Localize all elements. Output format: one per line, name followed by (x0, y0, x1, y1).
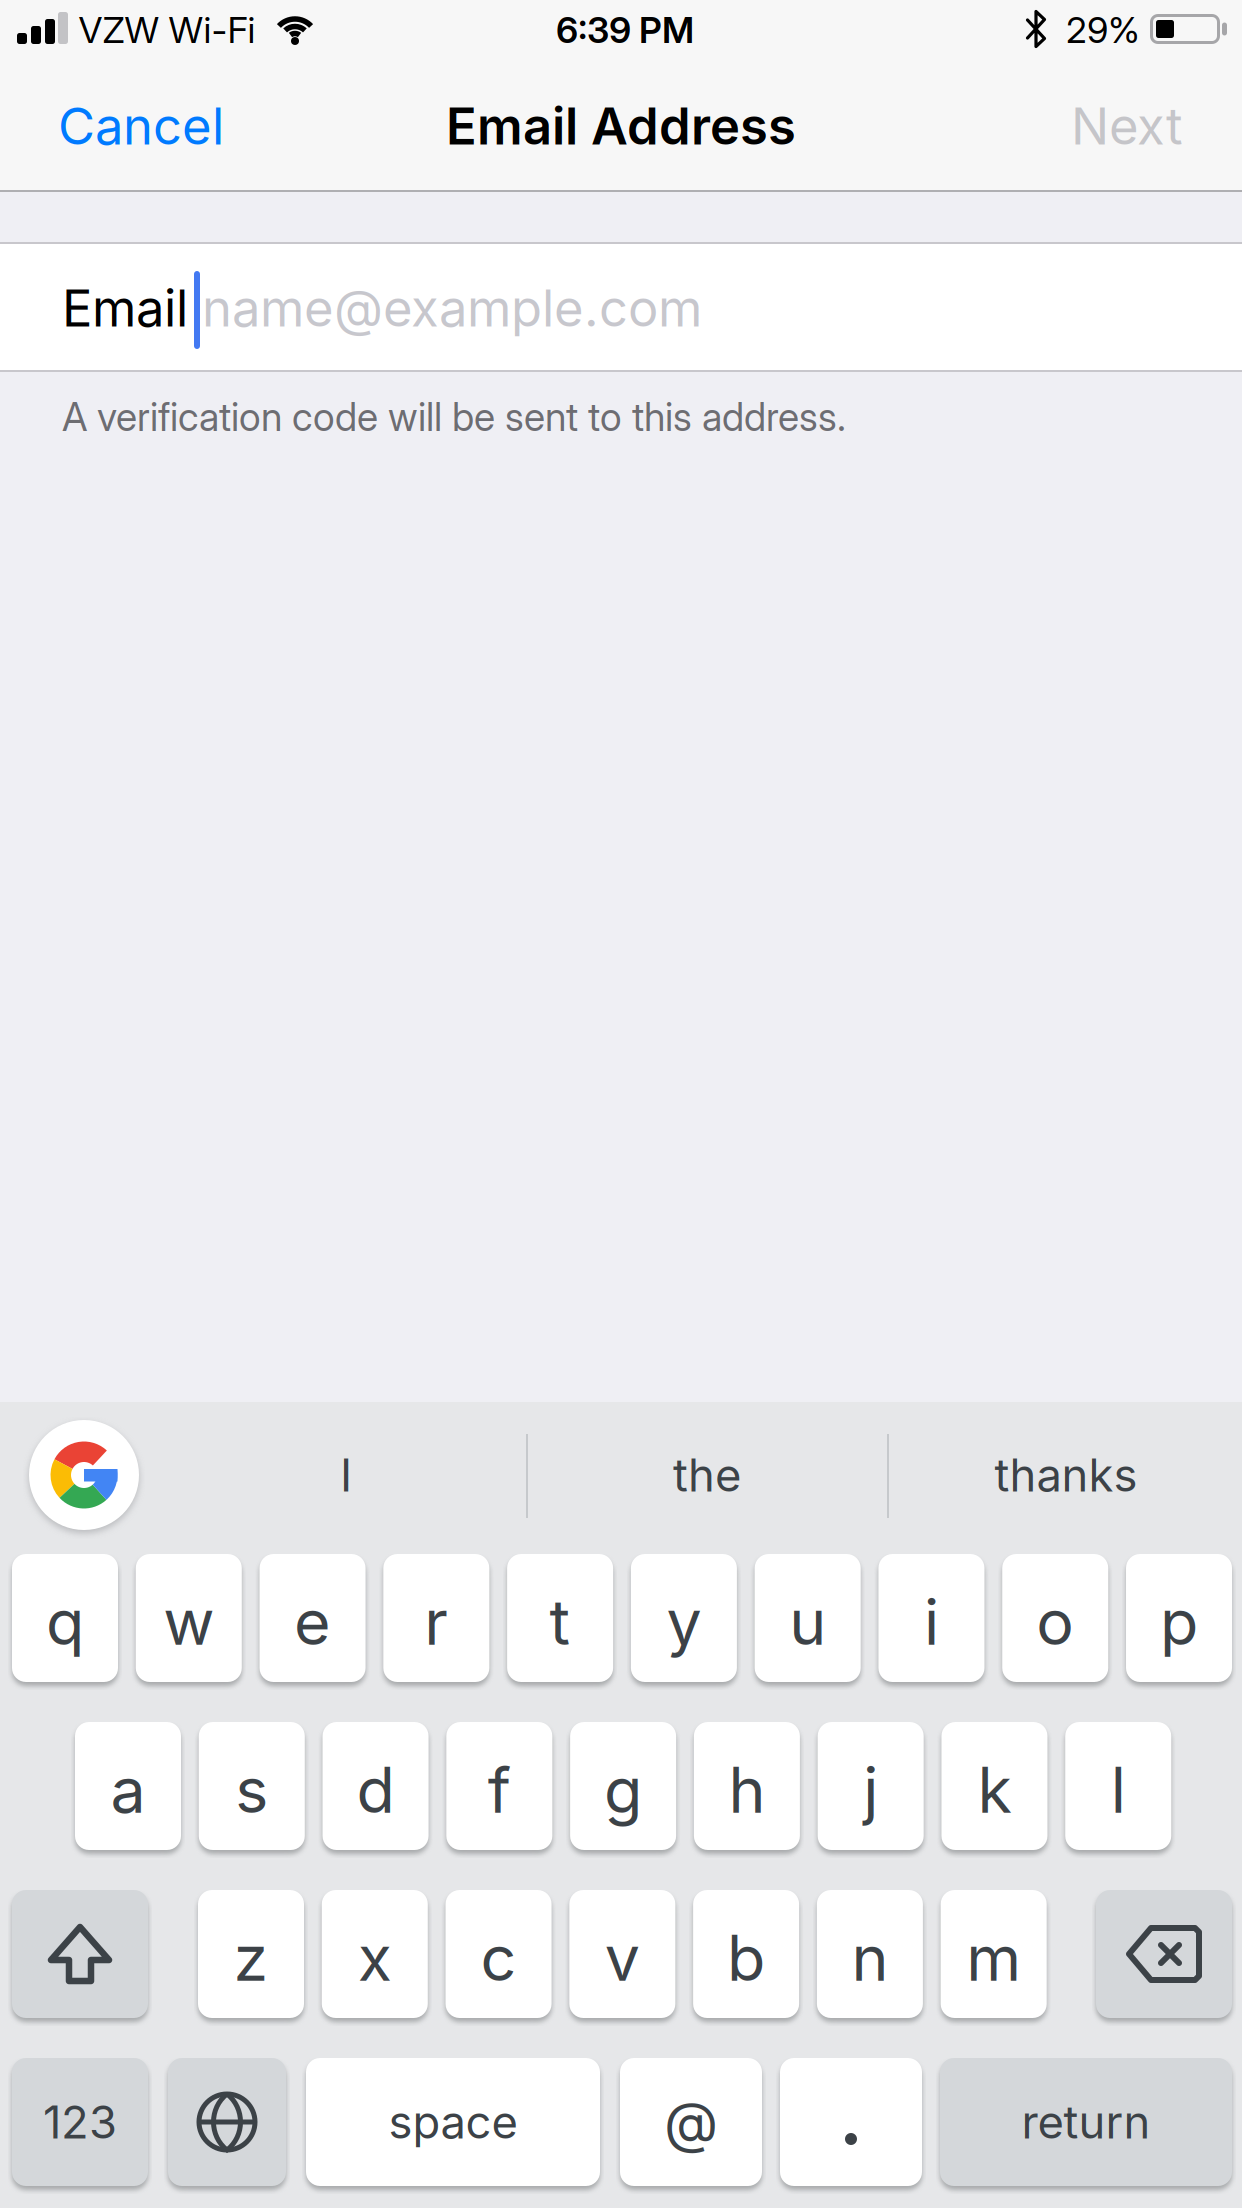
button[interactable]: k (941, 1722, 1047, 1850)
staticText: z (233, 1921, 268, 1995)
staticText: a (110, 1753, 145, 1827)
button[interactable]: q (12, 1554, 118, 1682)
staticText: name@example.com (202, 278, 702, 338)
button[interactable]: thanks (906, 1410, 1226, 1540)
staticText: I (340, 1448, 352, 1502)
staticText: s (235, 1753, 268, 1827)
button[interactable]: Next (1071, 76, 1183, 176)
button[interactable]: . (780, 2058, 922, 2186)
button[interactable]: y (631, 1554, 737, 1682)
staticText: return (1021, 2095, 1150, 2149)
button[interactable]: u (755, 1554, 861, 1682)
staticText: g (604, 1753, 642, 1827)
button[interactable]: g (570, 1722, 676, 1850)
button[interactable]: d (323, 1722, 429, 1850)
button[interactable]: f (446, 1722, 552, 1850)
button[interactable]: j (818, 1722, 924, 1850)
button[interactable]: z (198, 1890, 304, 2018)
button[interactable]: t (507, 1554, 613, 1682)
staticText: h (728, 1753, 765, 1827)
staticText: Email Address (446, 96, 796, 156)
staticText: c (481, 1921, 517, 1995)
button[interactable]: c (446, 1890, 552, 2018)
button[interactable]: the (547, 1410, 867, 1540)
staticText: @ (664, 2089, 718, 2155)
button[interactable]: o (1002, 1554, 1108, 1682)
button[interactable]: e (260, 1554, 366, 1682)
staticText: q (46, 1585, 84, 1659)
staticText: m (966, 1921, 1021, 1995)
button[interactable]: a (75, 1722, 181, 1850)
button[interactable]: @ (620, 2058, 762, 2186)
button[interactable]: p (1126, 1554, 1232, 1682)
staticText: d (357, 1753, 395, 1827)
staticText: j (863, 1753, 878, 1827)
staticText: Cancel (58, 96, 224, 156)
staticText: u (789, 1585, 826, 1659)
staticText: f (488, 1753, 511, 1827)
button[interactable]: v (569, 1890, 675, 2018)
button[interactable]: Shift (12, 1890, 148, 2018)
staticText: e (294, 1585, 331, 1659)
staticText: b (727, 1921, 765, 1995)
button[interactable]: Google search (29, 1420, 139, 1530)
staticText: o (1036, 1585, 1074, 1659)
staticText: n (851, 1921, 888, 1995)
button[interactable]: w (136, 1554, 242, 1682)
button[interactable]: Delete (1096, 1890, 1232, 2018)
staticText: 6:39 PM (556, 9, 694, 51)
button[interactable]: Cancel (58, 76, 224, 176)
staticText: t (550, 1585, 571, 1659)
staticText: x (358, 1921, 392, 1995)
button[interactable]: i (878, 1554, 984, 1682)
staticText: i (924, 1585, 939, 1659)
button[interactable]: b (693, 1890, 799, 2018)
button[interactable]: s (199, 1722, 305, 1850)
staticText: Email (62, 278, 188, 338)
button[interactable]: 123 (12, 2058, 148, 2186)
staticText: y (666, 1585, 701, 1659)
staticText: k (977, 1753, 1011, 1827)
staticText: space (388, 2095, 517, 2149)
button[interactable]: m (941, 1890, 1047, 2018)
staticText: v (605, 1921, 640, 1995)
button[interactable]: I (186, 1410, 506, 1540)
staticText: Next (1071, 96, 1183, 156)
button[interactable]: return (940, 2058, 1232, 2186)
staticText: thanks (994, 1448, 1137, 1502)
staticText: the (673, 1448, 741, 1502)
button[interactable]: n (817, 1890, 923, 2018)
button[interactable]: l (1065, 1722, 1171, 1850)
staticText: r (424, 1585, 448, 1659)
staticText: w (163, 1585, 214, 1659)
button[interactable]: x (322, 1890, 428, 2018)
button[interactable]: Next keyboard (168, 2058, 286, 2186)
button[interactable]: space (306, 2058, 600, 2186)
staticText: p (1160, 1585, 1198, 1659)
staticText: 29% (1066, 9, 1140, 51)
staticText: l (1111, 1753, 1126, 1827)
button[interactable]: r (383, 1554, 489, 1682)
staticText: A verification code will be sent to this… (62, 394, 846, 440)
staticText: 123 (43, 2095, 117, 2149)
staticText: VZW Wi-Fi (78, 9, 255, 51)
button[interactable]: Email (0, 243, 1242, 371)
button[interactable]: h (694, 1722, 800, 1850)
